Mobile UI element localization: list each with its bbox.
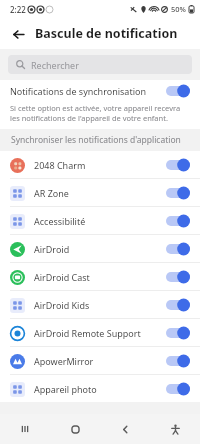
button[interactable]: Retour xyxy=(100,414,150,444)
staticText: 2048 Charm xyxy=(34,159,166,171)
staticText: AirDroid Kids xyxy=(34,299,166,311)
button[interactable]: Activer xyxy=(166,353,190,369)
staticText: AirDroid Cast xyxy=(34,271,166,283)
staticText: AirDroid xyxy=(34,243,166,255)
button[interactable]: AR Zone xyxy=(0,179,200,206)
staticText: Appareil photo xyxy=(34,383,166,395)
button[interactable]: Activer xyxy=(166,325,190,341)
button[interactable]: Applications récentes xyxy=(0,414,50,444)
staticText: Accessibilité xyxy=(34,215,166,227)
staticText: Notifications de synchronisation xyxy=(10,85,166,97)
staticText: Bascule de notification xyxy=(35,25,178,42)
button[interactable]: Activer xyxy=(166,297,190,313)
button[interactable]: Activer xyxy=(166,381,190,397)
staticText: ApowerMirror xyxy=(34,355,166,367)
button[interactable]: Activer xyxy=(166,213,190,229)
button[interactable]: Activer xyxy=(166,157,190,173)
staticText: 50% xyxy=(171,4,186,14)
button[interactable]: Notifications de synchronisation xyxy=(0,80,200,102)
staticText: 2:22 xyxy=(10,4,26,15)
staticText: AR Zone xyxy=(34,187,166,199)
staticText: AirDroid Remote Support xyxy=(34,327,166,339)
button[interactable]: Accessibilité xyxy=(150,414,200,444)
button[interactable]: AirDroid Kids xyxy=(0,291,200,318)
button[interactable]: 2048 Charm xyxy=(0,151,200,178)
button[interactable]: Activer xyxy=(166,83,190,99)
button[interactable]: ApowerMirror xyxy=(0,347,200,374)
button[interactable]: Accueil xyxy=(50,414,100,444)
button[interactable]: Appareil photo xyxy=(0,375,200,402)
button[interactable]: AirDroid Remote Support xyxy=(0,319,200,346)
button[interactable]: Activer xyxy=(166,241,190,257)
button[interactable]: Retour xyxy=(6,22,30,46)
button[interactable]: Accessibilité xyxy=(0,207,200,234)
button[interactable]: AirDroid Cast xyxy=(0,263,200,290)
staticText: Si cette option est activée, votre appar… xyxy=(10,103,188,123)
button[interactable]: Rechercher xyxy=(8,55,192,74)
staticText: Synchroniser les notifications d'applica… xyxy=(11,134,181,146)
button[interactable]: Activer xyxy=(166,269,190,285)
staticText: Rechercher xyxy=(31,59,79,71)
button[interactable]: Activer xyxy=(166,185,190,201)
button[interactable]: AirDroid xyxy=(0,235,200,262)
